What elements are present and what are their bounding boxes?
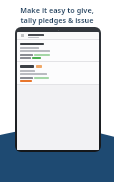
staticText: tally pledges & issue statements	[5, 15, 109, 34]
button[interactable]	[17, 62, 99, 84]
button[interactable]: Open navigation menu	[20, 33, 25, 38]
button[interactable]	[17, 40, 99, 61]
staticText: Make it easy to give,	[20, 5, 94, 15]
